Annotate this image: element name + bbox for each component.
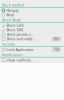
staticText: Block Mode bbox=[2, 18, 21, 22]
staticText: Security bbox=[2, 42, 15, 46]
staticText: Notifications bbox=[2, 53, 23, 57]
button[interactable]: Mute bbox=[0, 13, 64, 17]
staticText: Lock Application bbox=[6, 47, 33, 52]
staticText: Mute bbox=[6, 13, 14, 17]
button[interactable]: Block and notify by SMS bbox=[0, 37, 64, 41]
staticText: Block SMS bbox=[6, 28, 23, 32]
staticText: Block Calls bbox=[6, 23, 24, 28]
staticText: Block and notify by SMS bbox=[6, 37, 36, 41]
staticText: show notifications bbox=[6, 58, 34, 62]
staticText: Block private numbers bbox=[6, 32, 34, 37]
button[interactable]: Block private numbers bbox=[0, 32, 64, 37]
staticText: Block method bbox=[2, 3, 24, 7]
button[interactable]: Block SMS bbox=[0, 28, 64, 32]
button[interactable]: show notifications bbox=[0, 58, 64, 62]
staticText: SMS bbox=[53, 37, 60, 41]
button[interactable]: Lock Application bbox=[0, 47, 64, 52]
button[interactable]: Hangup bbox=[0, 8, 64, 13]
button[interactable]: Block Calls bbox=[0, 23, 64, 28]
staticText: PIN bbox=[54, 48, 59, 52]
staticText: Hangup bbox=[6, 8, 18, 13]
